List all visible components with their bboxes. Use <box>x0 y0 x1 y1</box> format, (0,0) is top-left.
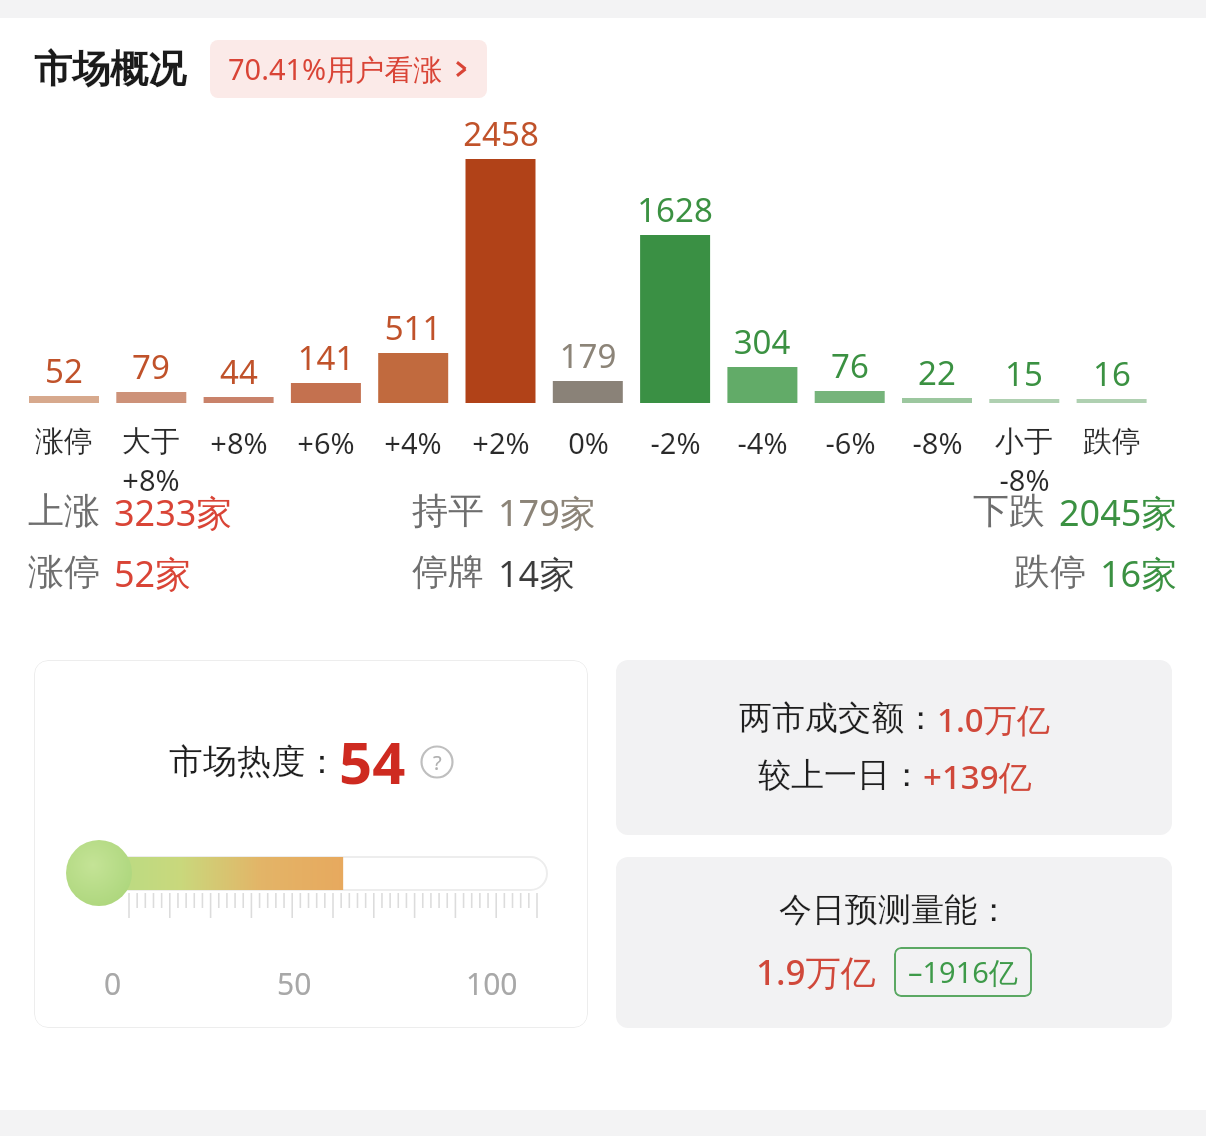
staticText: -4% <box>737 423 788 462</box>
staticText: 511 <box>353 305 473 350</box>
staticText: 50 <box>277 963 312 1004</box>
staticText: 市场概况 <box>34 45 186 93</box>
staticText: 3233家 <box>114 488 233 537</box>
staticText: 持平 <box>412 488 484 533</box>
staticText: 1628 <box>615 187 735 232</box>
staticText: 76 <box>790 343 910 388</box>
staticText: 54 <box>339 722 406 801</box>
staticText: 141 <box>266 335 386 380</box>
button[interactable]: 市场热度： <box>34 660 588 1028</box>
staticText: 44 <box>179 349 299 394</box>
button[interactable]: 帮助说明 <box>420 745 454 779</box>
staticText: 179家 <box>498 488 596 537</box>
staticText: +6% <box>297 423 355 462</box>
staticText: 15 <box>964 351 1084 396</box>
staticText: +139亿 <box>923 754 1032 799</box>
staticText: 304 <box>702 319 822 364</box>
staticText: –1916亿 <box>908 952 1018 992</box>
staticText: 16 <box>1052 351 1172 396</box>
staticText: -8% <box>912 423 963 462</box>
staticText: 52 <box>4 348 124 393</box>
staticText: ? <box>433 749 442 776</box>
staticText: -6% <box>825 423 876 462</box>
staticText: -2% <box>650 423 701 462</box>
staticText: 0 <box>104 963 122 1004</box>
staticText: 2045家 <box>1059 488 1178 537</box>
staticText: 下跌 <box>973 488 1045 533</box>
staticText: 70.41%用户看涨 <box>228 49 443 89</box>
button[interactable]: 今日预测量能： <box>616 857 1172 1028</box>
button[interactable]: 两市成交额： <box>616 660 1172 835</box>
button[interactable]: 70.41%用户看涨 <box>210 40 487 98</box>
staticText: 大于 <box>122 423 180 460</box>
staticText: 16家 <box>1100 549 1178 598</box>
staticText: 小于 <box>995 423 1053 460</box>
staticText: +8% <box>210 423 268 462</box>
staticText: +2% <box>472 423 530 462</box>
staticText: 14家 <box>498 549 576 598</box>
staticText: 停牌 <box>412 549 484 594</box>
staticText: 涨停 <box>28 549 100 594</box>
staticText: 1.0万亿 <box>937 697 1050 742</box>
staticText: 52家 <box>114 549 192 598</box>
staticText: 跌停 <box>1014 549 1086 594</box>
staticText: 1.9万亿 <box>756 948 876 996</box>
staticText: +4% <box>384 423 442 462</box>
staticText: 179 <box>528 333 648 378</box>
staticText: 涨停 <box>35 423 93 460</box>
staticText: 上涨 <box>28 488 100 533</box>
staticText: 市场热度： <box>169 740 339 783</box>
staticText: 100 <box>466 963 518 1004</box>
staticText: 79 <box>91 344 211 389</box>
staticText: 跌停 <box>1083 423 1141 460</box>
staticText: 0% <box>568 423 609 462</box>
staticText: 较上一日： <box>758 754 923 796</box>
staticText: 两市成交额： <box>739 697 937 739</box>
staticText: 今日预测量能： <box>779 889 1010 931</box>
staticText: +8% <box>122 460 180 499</box>
staticText: 22 <box>877 350 997 395</box>
staticText: -8% <box>999 460 1050 499</box>
staticText: 2458 <box>441 111 561 156</box>
